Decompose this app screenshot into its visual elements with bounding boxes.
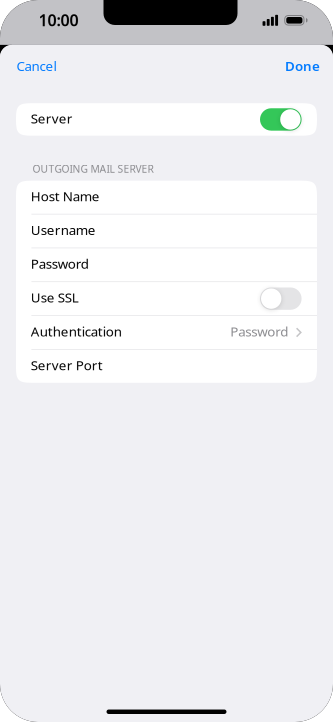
staticText: Authentication bbox=[31, 322, 122, 340]
button[interactable]: Authentication bbox=[16, 316, 317, 349]
staticText: OUTGOING MAIL SERVER bbox=[32, 162, 153, 176]
staticText: Server bbox=[31, 109, 73, 127]
staticText: 10:00 bbox=[38, 9, 78, 31]
staticText: Username bbox=[31, 221, 96, 239]
staticText: Password bbox=[230, 322, 288, 340]
staticText: Server Port bbox=[31, 356, 103, 374]
button[interactable]: Host Name bbox=[16, 181, 317, 214]
button[interactable]: Cancel bbox=[0, 46, 73, 86]
button[interactable]: Use SSL switch bbox=[260, 287, 302, 310]
staticText: Use SSL bbox=[31, 289, 79, 306]
button[interactable]: Use SSL bbox=[16, 282, 317, 315]
button[interactable]: Server switch bbox=[260, 108, 302, 131]
staticText: Host Name bbox=[31, 187, 100, 205]
button[interactable]: Server bbox=[16, 103, 317, 136]
staticText: Password bbox=[31, 255, 89, 272]
button[interactable]: Done bbox=[272, 46, 333, 86]
staticText: Cancel bbox=[16, 57, 56, 75]
button[interactable]: Username bbox=[16, 214, 317, 248]
staticText: Done bbox=[285, 57, 320, 75]
button[interactable]: Server Port bbox=[16, 350, 317, 383]
button[interactable]: Password bbox=[16, 248, 317, 281]
